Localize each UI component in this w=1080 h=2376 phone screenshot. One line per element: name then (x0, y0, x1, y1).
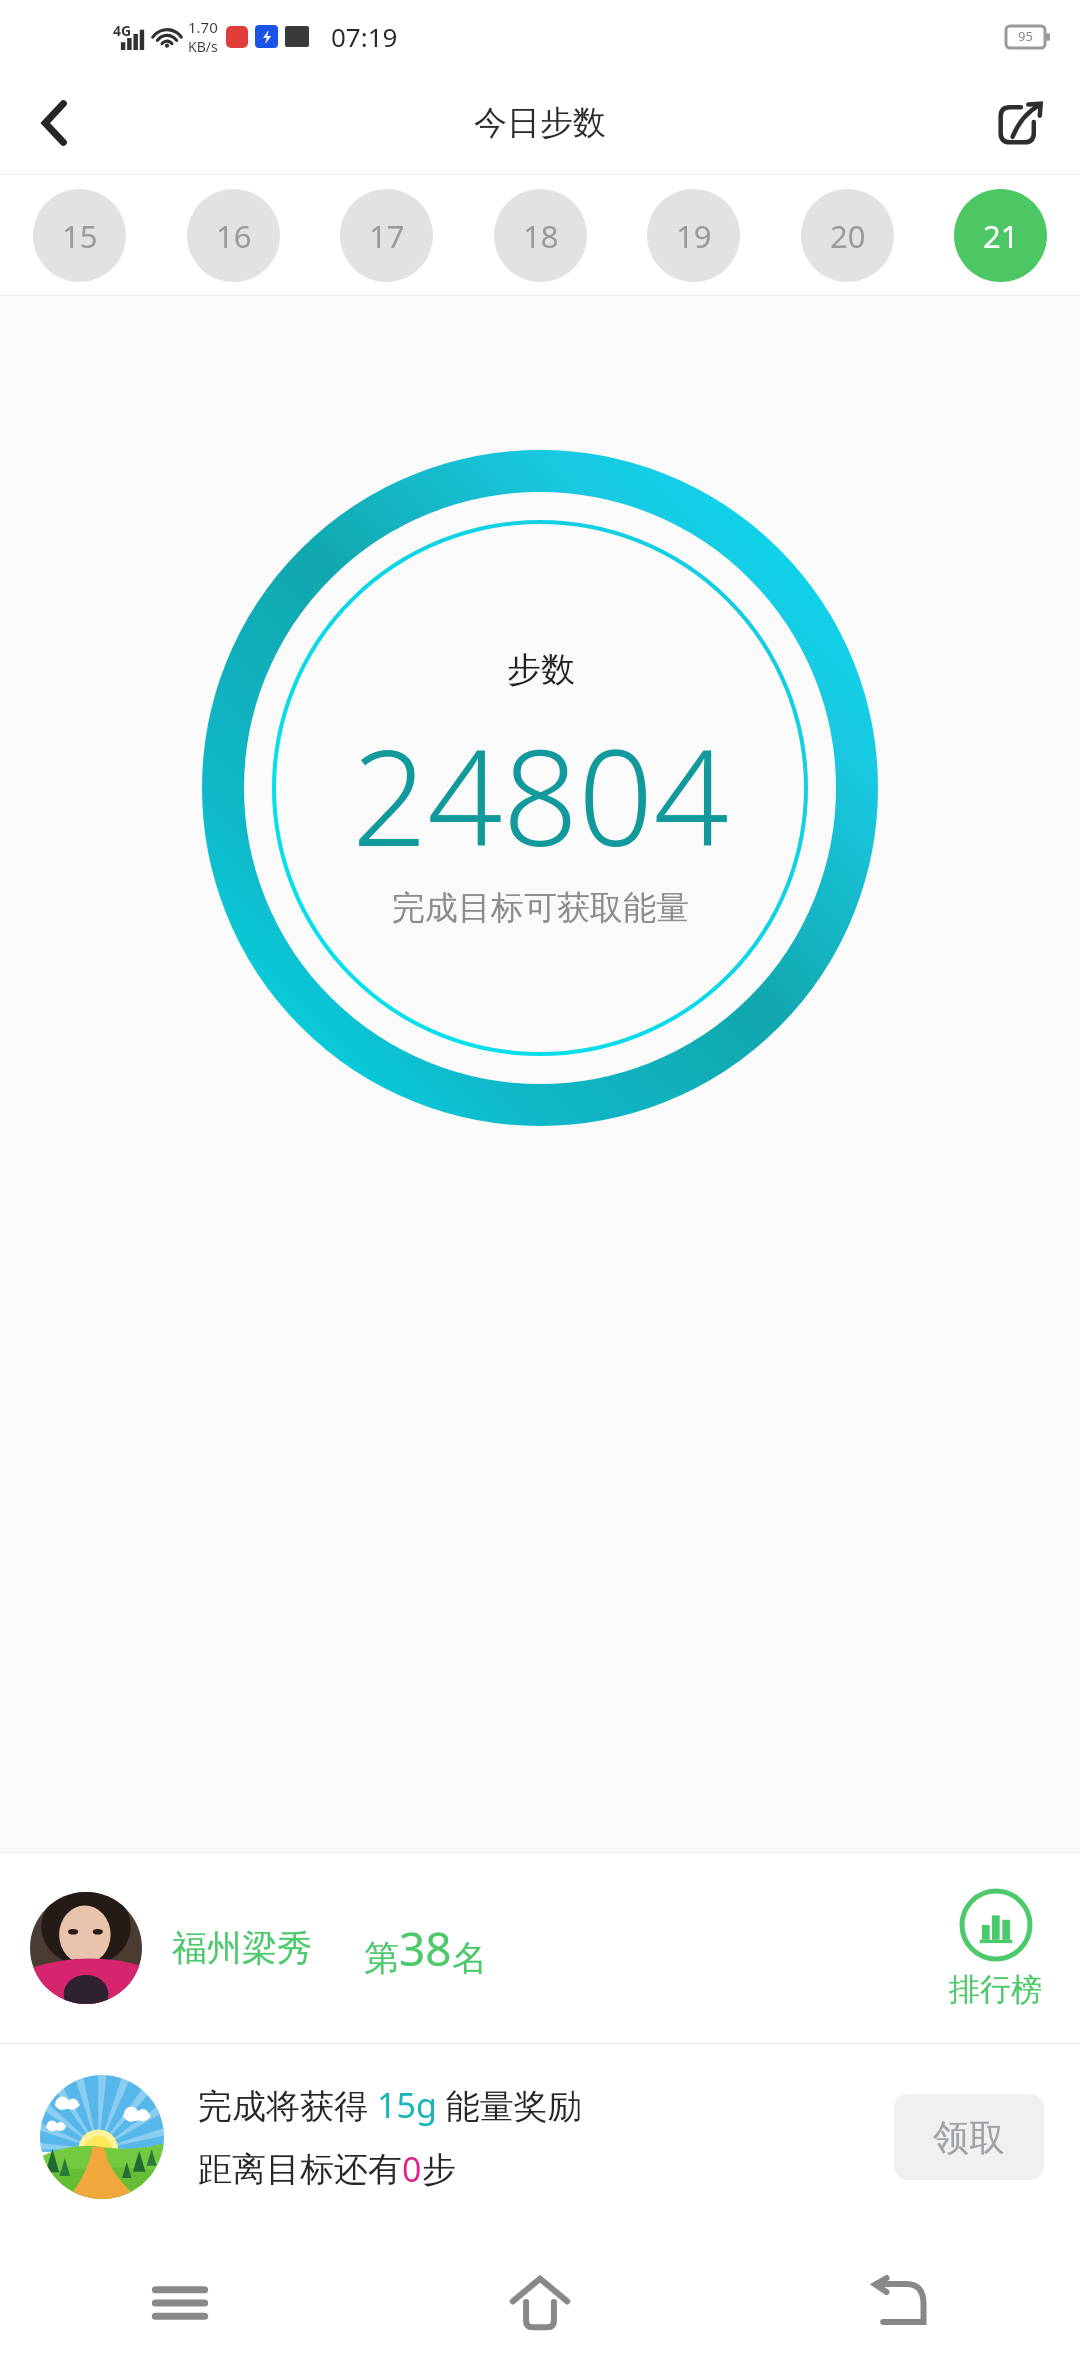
staticText: 能量奖励 (437, 2082, 582, 2128)
staticText: 完成目标可获取能量 (392, 887, 689, 929)
staticText: KB/s (188, 37, 218, 56)
button[interactable]: 16 (187, 189, 280, 282)
staticText: 完成将获得 (198, 2082, 377, 2128)
staticText: 20 (830, 215, 866, 257)
button[interactable]: 19 (647, 189, 740, 282)
staticText: 步数 (507, 648, 575, 691)
button[interactable]: 15 (33, 189, 126, 282)
staticText: 18 (523, 215, 559, 257)
staticText: 17 (369, 215, 405, 257)
staticText: 95 (1018, 27, 1033, 45)
staticText: 领取 (933, 2115, 1005, 2160)
staticText: 16 (216, 215, 252, 257)
button[interactable]: Home (360, 2230, 720, 2376)
button[interactable]: Back (720, 2230, 1080, 2376)
staticText: 07:19 (331, 19, 398, 54)
button[interactable]: 排行榜 (941, 1882, 1050, 2015)
button[interactable]: 福州梁秀 (0, 1853, 1080, 2043)
staticText: 21 (983, 215, 1019, 257)
staticText: 4G (113, 21, 132, 40)
staticText: 38 (399, 1917, 452, 1980)
button[interactable]: 17 (340, 189, 433, 282)
button[interactable]: Recent apps (0, 2230, 360, 2376)
staticText: 15 (62, 215, 98, 257)
staticText: 0 (402, 2146, 422, 2192)
button[interactable]: 20 (801, 189, 894, 282)
staticText: 15g (377, 2082, 437, 2128)
staticText: 排行榜 (949, 1970, 1042, 2009)
staticText: 步 (422, 2148, 456, 2191)
staticText: 第 (364, 1936, 399, 1980)
staticText: 福州梁秀 (172, 1926, 312, 1970)
staticText: 1.70 (188, 17, 218, 37)
button[interactable]: 21 (954, 189, 1047, 282)
staticText: 今日步数 (474, 102, 606, 144)
staticText: 距离目标还有 (198, 2148, 402, 2191)
staticText: 19 (676, 215, 712, 257)
button[interactable]: 领取 (894, 2094, 1044, 2180)
staticText: 24804 (352, 705, 729, 885)
staticText: 名 (452, 1936, 487, 1980)
button[interactable]: 18 (494, 189, 587, 282)
button[interactable]: Share (984, 87, 1056, 159)
button[interactable]: Back (18, 87, 90, 159)
